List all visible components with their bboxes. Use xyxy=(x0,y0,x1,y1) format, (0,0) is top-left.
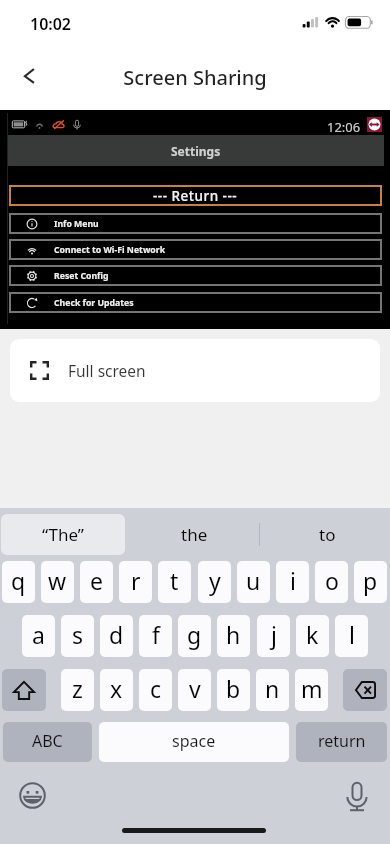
button[interactable]: ABC xyxy=(3,722,92,762)
staticText: g xyxy=(187,619,202,650)
button[interactable]: g xyxy=(178,615,211,657)
button[interactable]: o xyxy=(315,561,348,603)
button[interactable]: p xyxy=(354,561,387,603)
button[interactable]: r xyxy=(119,561,152,603)
staticText: x xyxy=(110,673,123,704)
staticText: e xyxy=(90,565,103,596)
staticText: Settings xyxy=(171,143,221,159)
button[interactable]: a xyxy=(22,615,55,657)
button[interactable]: --- Return --- xyxy=(9,185,382,206)
button[interactable]: t xyxy=(158,561,191,603)
staticText: 10:02 xyxy=(30,13,72,35)
staticText: l xyxy=(349,619,355,650)
staticText: “The” xyxy=(42,523,84,546)
staticText: Connect to Wi-Fi Network xyxy=(54,244,166,256)
button[interactable]: k xyxy=(296,615,329,657)
staticText: Reset Config xyxy=(54,270,109,282)
staticText: j xyxy=(271,619,277,650)
button[interactable]: Connect to Wi-Fi Network xyxy=(9,239,382,260)
staticText: ABC xyxy=(32,730,63,752)
staticText: c xyxy=(150,673,162,704)
button[interactable]: c xyxy=(139,669,172,711)
staticText: f xyxy=(152,619,160,650)
button[interactable]: d xyxy=(100,615,133,657)
staticText: --- Return --- xyxy=(153,187,238,205)
staticText: the xyxy=(181,523,208,546)
button[interactable]: j xyxy=(257,615,290,657)
button[interactable]: y xyxy=(198,561,231,603)
button[interactable]: i xyxy=(276,561,309,603)
staticText: b xyxy=(226,673,241,704)
button[interactable]: l xyxy=(335,615,368,657)
staticText: k xyxy=(306,619,319,650)
staticText: o xyxy=(325,565,339,596)
button[interactable]: Dictation xyxy=(338,777,375,814)
button[interactable]: f xyxy=(139,615,172,657)
button[interactable]: e xyxy=(80,561,113,603)
button[interactable]: Emoji keyboard xyxy=(14,777,51,814)
button[interactable]: z xyxy=(61,669,94,711)
staticText: 12:06 xyxy=(327,118,361,136)
staticText: to xyxy=(319,523,336,546)
staticText: Screen Sharing xyxy=(0,64,390,91)
staticText: y xyxy=(209,565,221,596)
staticText: z xyxy=(72,673,83,704)
button[interactable]: m xyxy=(295,669,328,711)
button[interactable]: s xyxy=(61,615,94,657)
button[interactable]: Check for Updates xyxy=(9,292,382,313)
staticText: Check for Updates xyxy=(54,297,134,309)
staticText: t xyxy=(170,565,179,596)
button[interactable]: u xyxy=(237,561,270,603)
staticText: w xyxy=(48,565,67,596)
staticText: p xyxy=(363,565,378,596)
button[interactable]: space xyxy=(99,722,289,762)
button[interactable]: n xyxy=(256,669,289,711)
button[interactable]: “The” xyxy=(1,514,125,555)
staticText: m xyxy=(301,673,323,704)
staticText: Full screen xyxy=(68,360,146,381)
button[interactable]: Backspace xyxy=(343,669,387,711)
staticText: n xyxy=(265,673,280,704)
staticText: return xyxy=(318,730,366,752)
button[interactable]: b xyxy=(217,669,250,711)
staticText: q xyxy=(11,565,26,596)
button[interactable]: Back xyxy=(4,51,54,101)
staticText: i xyxy=(290,565,296,596)
staticText: u xyxy=(246,565,261,596)
button[interactable]: w xyxy=(41,561,74,603)
staticText: h xyxy=(226,619,241,650)
button[interactable]: Reset Config xyxy=(9,265,382,286)
staticText: r xyxy=(131,565,141,596)
button[interactable]: q xyxy=(2,561,35,603)
button[interactable]: the xyxy=(131,514,257,555)
button[interactable]: x xyxy=(100,669,133,711)
staticText: a xyxy=(32,619,45,650)
button[interactable]: v xyxy=(178,669,211,711)
button[interactable]: Info Menu xyxy=(9,213,382,234)
button[interactable]: return xyxy=(296,722,387,762)
staticText: v xyxy=(189,673,201,704)
button[interactable]: h xyxy=(217,615,250,657)
staticText: space xyxy=(172,730,216,752)
staticText: Info Menu xyxy=(54,218,99,230)
staticText: d xyxy=(109,619,124,650)
button[interactable]: Full screen xyxy=(10,339,380,402)
button[interactable]: to xyxy=(264,514,390,555)
staticText: s xyxy=(72,619,84,650)
button[interactable]: Shift xyxy=(2,669,46,711)
